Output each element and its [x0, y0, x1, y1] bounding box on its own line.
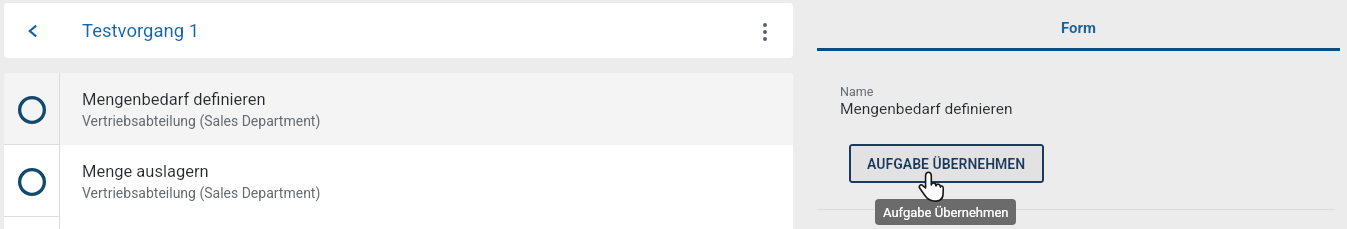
button[interactable]: Back: [4, 3, 60, 58]
staticText: Testvorgang 1: [82, 20, 200, 42]
staticText: Mengenbedarf definieren: [840, 100, 1013, 118]
staticText: Vertriebsabteilung (Sales Department): [82, 185, 321, 201]
staticText: Vertriebsabteilung (Sales Department): [82, 113, 321, 129]
staticText: Form: [1061, 19, 1097, 37]
button[interactable]: AUFGABE ÜBERNEHMEN: [849, 144, 1044, 183]
staticText: AUFGABE ÜBERNEHMEN: [867, 156, 1026, 172]
button[interactable]: More options: [737, 3, 793, 58]
button[interactable]: Mengenbedarf definieren: [4, 73, 793, 145]
staticText: Menge auslagern: [82, 162, 209, 181]
staticText: Name: [840, 84, 874, 99]
button[interactable]: Form: [817, 4, 1340, 52]
staticText: Aufgabe Übernehmen: [883, 205, 1009, 220]
button[interactable]: Menge auslagern: [4, 145, 793, 217]
staticText: Mengenbedarf definieren: [82, 90, 266, 109]
